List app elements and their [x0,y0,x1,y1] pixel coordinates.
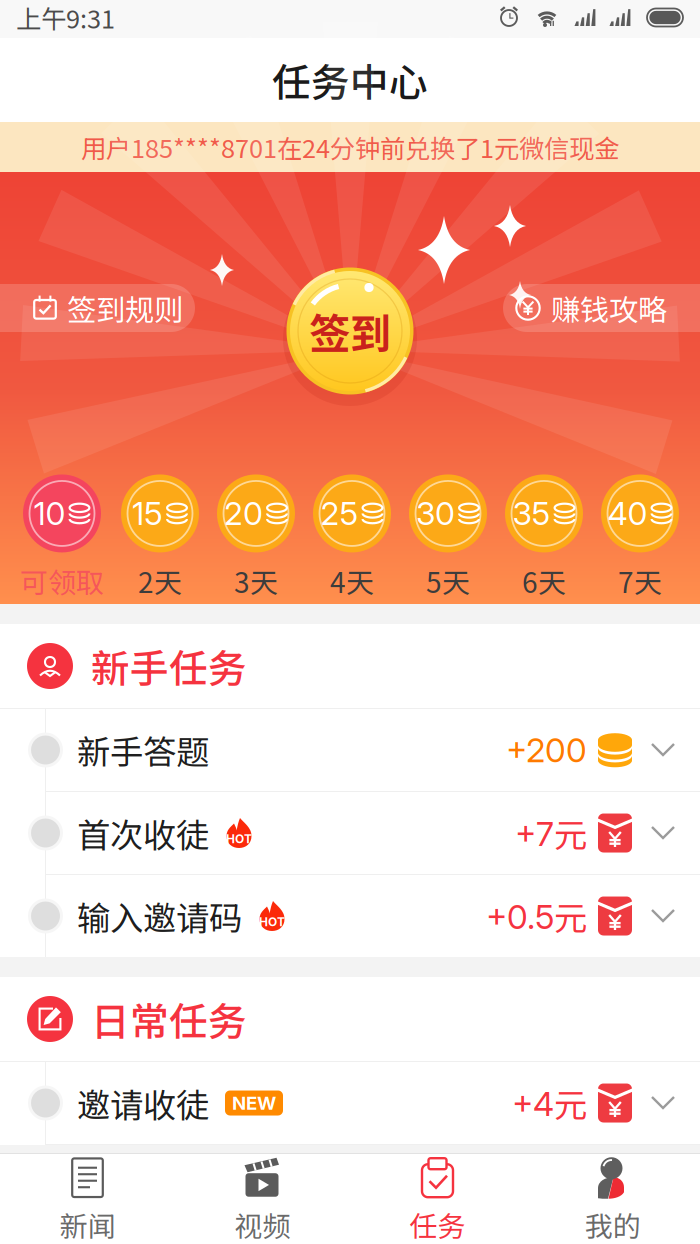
staticText: HOT [226,832,252,846]
staticText: 35 [512,494,550,533]
staticText: 7天 [618,560,662,601]
staticText: 3天 [234,560,278,601]
button[interactable]: 任务 [350,1154,525,1244]
button[interactable]: 赚钱攻略 [478,284,700,332]
staticText: 5天 [426,560,470,601]
staticText: 30 [416,494,455,533]
button[interactable]: 15 [120,473,200,601]
button[interactable]: 10 [20,473,104,601]
staticText: +0.5元 [486,892,587,940]
staticText: 输入邀请码 [77,892,242,940]
button[interactable]: 30 [408,473,488,601]
button[interactable]: 我的 [525,1154,700,1244]
staticText: 任务中心 [272,52,428,108]
staticText: 10 [33,494,65,533]
staticText: 用户185****8701在24分钟前兑换了1元微信现金 [81,129,619,165]
staticText: 赚钱攻略 [551,287,667,329]
staticText: 新手任务 [91,638,247,694]
staticText: 视频 [234,1204,290,1244]
staticText: 签到 [309,301,391,361]
staticText: 上午9:31 [16,0,115,36]
staticText: 25 [320,494,358,533]
staticText: 任务 [409,1204,465,1244]
button[interactable]: 输入邀请码 [0,875,700,957]
staticText: +200 [506,730,587,770]
staticText: 15 [132,494,163,533]
button[interactable]: 25 [312,473,392,601]
staticText: 日常任务 [91,991,247,1047]
staticText: 新闻 [59,1204,115,1244]
staticText: 4天 [330,560,374,601]
button[interactable]: 35 [504,473,584,601]
staticText: 签到规则 [67,287,183,329]
staticText: 可领取 [20,560,104,601]
staticText: NEW [232,1092,276,1114]
staticText: 6天 [522,560,566,601]
button[interactable]: 20 [216,473,296,601]
button[interactable]: 邀请收徒 [0,1062,700,1145]
staticText: +7元 [515,809,587,857]
staticText: +4元 [512,1079,587,1127]
staticText: 40 [607,494,647,533]
button[interactable]: 40 [600,473,680,601]
staticText: 2天 [138,560,182,601]
staticText: 新手答题 [77,726,209,774]
button[interactable]: 签到规则 [0,284,220,332]
staticText: 我的 [584,1204,640,1244]
button[interactable]: 视频 [175,1154,350,1244]
staticText: 20 [224,494,263,533]
staticText: 首次收徒 [77,809,209,857]
staticText: 邀请收徒 [77,1079,209,1127]
staticText: HOT [259,915,285,929]
button[interactable]: 签到 [275,256,425,406]
button[interactable]: 新手答题 [0,709,700,792]
button[interactable]: 首次收徒 [0,792,700,875]
button[interactable]: 新闻 [0,1154,175,1244]
